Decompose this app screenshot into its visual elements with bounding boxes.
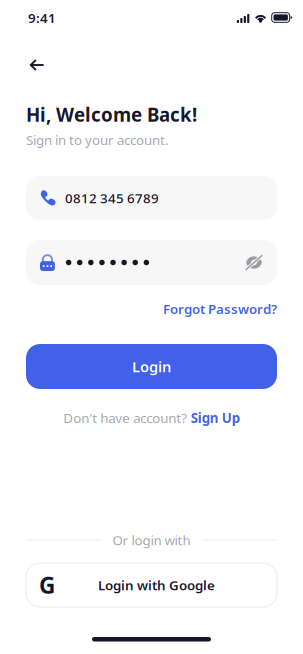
- button[interactable]: Back: [23, 53, 51, 77]
- staticText: Hi, Welcome Back!: [26, 102, 197, 127]
- staticText: 9:41: [28, 9, 56, 27]
- button[interactable]: Don't have account?: [63, 404, 240, 432]
- staticText: Login with Google: [98, 576, 215, 594]
- staticText: Login: [132, 357, 171, 376]
- staticText: Or login with: [112, 531, 190, 549]
- button[interactable]: Forgot Password?: [163, 296, 277, 322]
- staticText: Don't have account?: [63, 409, 187, 427]
- staticText: Sign in to your account.: [26, 131, 169, 149]
- staticText: Sign Up: [191, 409, 240, 427]
- staticText: G: [39, 570, 55, 600]
- button[interactable]: Login: [26, 344, 277, 389]
- button[interactable]: Show password: [243, 251, 265, 273]
- staticText: 0812 345 6789: [65, 189, 159, 207]
- button[interactable]: G: [26, 563, 277, 607]
- staticText: Forgot Password?: [163, 300, 277, 318]
- button[interactable]: 0812 345 6789: [26, 176, 277, 220]
